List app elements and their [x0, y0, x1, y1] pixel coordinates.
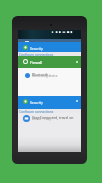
button[interactable]: Security [18, 96, 81, 109]
button[interactable]: Configure connections [18, 109, 81, 113]
staticText: Firewall [30, 60, 43, 64]
staticText: Security [30, 46, 43, 50]
staticText: connecting device [32, 74, 58, 78]
staticText: Configure connections [19, 110, 54, 114]
button[interactable]: Stay Connected, travel on [18, 113, 81, 152]
button[interactable]: Security [18, 42, 81, 52]
button[interactable]: Bluetooth [18, 68, 81, 96]
button[interactable]: Firewall [18, 56, 81, 68]
button[interactable]: Configure connections [18, 52, 81, 56]
staticText: Configure connections [19, 53, 54, 57]
staticText: Security [30, 100, 43, 104]
staticText: Bluetooth [32, 72, 49, 77]
staticText: Stay Connected, travel on [32, 115, 74, 120]
staticText: 25 MB · 1 day [32, 117, 51, 121]
